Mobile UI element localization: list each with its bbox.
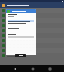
button[interactable]: Item icon [6,9,36,13]
button[interactable] [8,20,34,22]
button[interactable] [0,33,64,38]
button[interactable] [0,18,64,23]
button[interactable] [15,54,26,57]
other: App icon [2,4,5,7]
button[interactable] [0,43,64,48]
button[interactable] [0,48,64,53]
button[interactable] [0,13,64,18]
button[interactable]: Back [12,66,17,71]
button[interactable] [0,8,64,13]
button[interactable] [0,28,64,33]
button[interactable]: Recents [47,66,52,71]
button[interactable] [0,23,64,28]
button[interactable]: Home [30,66,35,71]
button[interactable] [0,38,64,43]
button[interactable] [0,53,64,58]
button[interactable]: App icon [0,2,64,8]
